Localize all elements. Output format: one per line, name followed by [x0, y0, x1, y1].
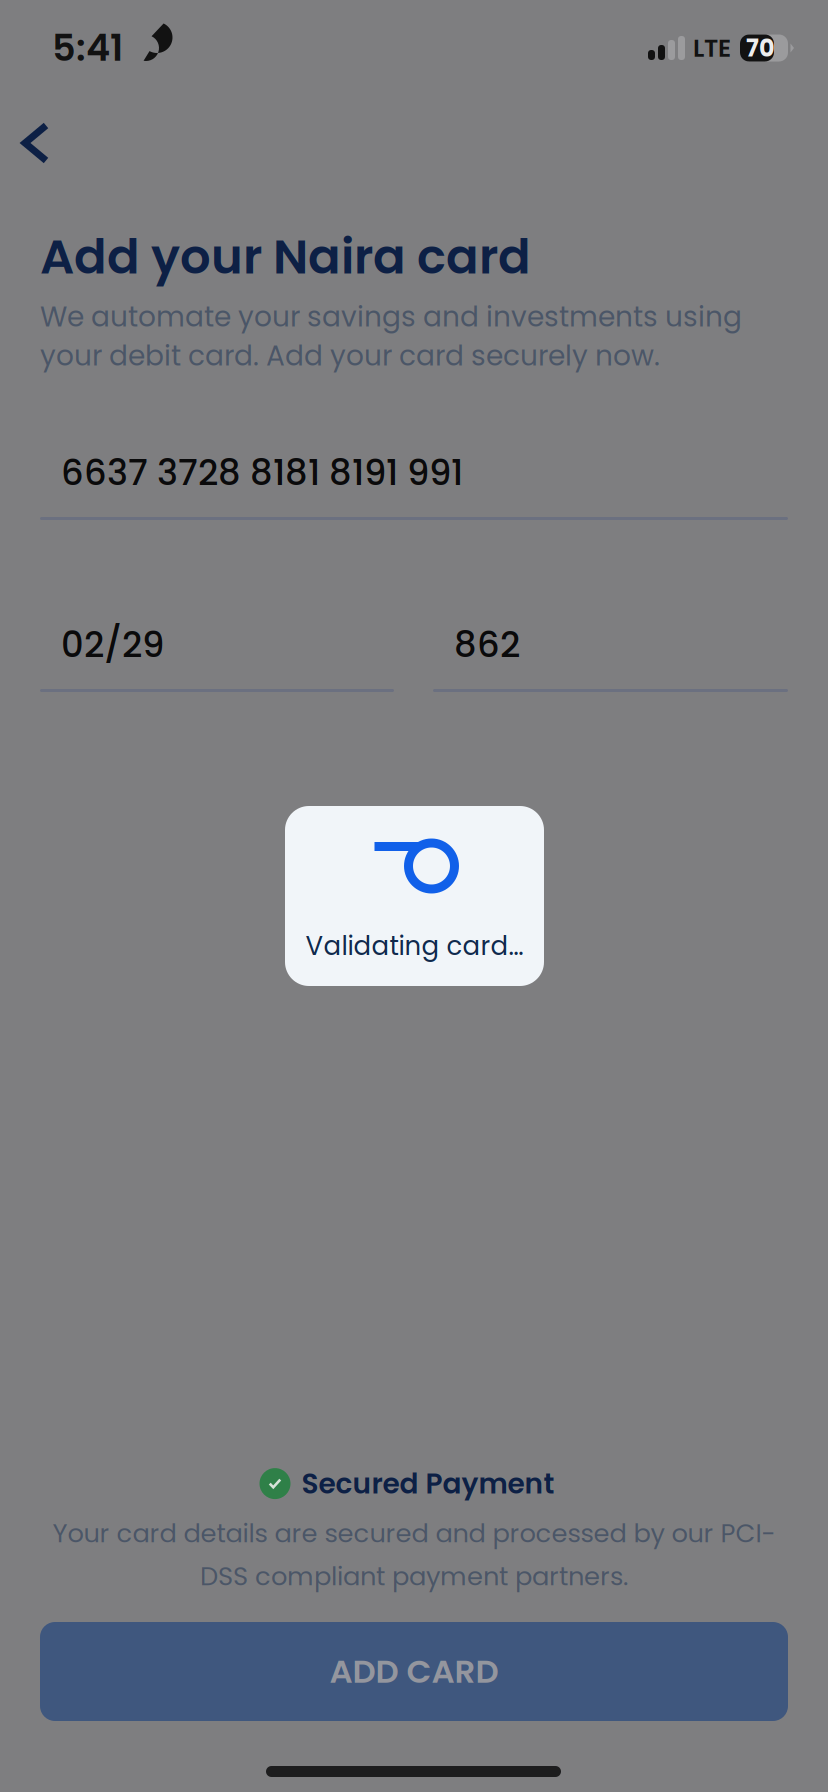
- staticText: ADD CARD: [329, 1649, 498, 1694]
- staticText: 02/29: [61, 620, 164, 669]
- button[interactable]: 862: [433, 626, 788, 688]
- staticText: Add your Naira card: [40, 223, 531, 290]
- button[interactable]: ADD CARD: [40, 1622, 788, 1721]
- staticText: DSS compliant payment partners.: [200, 1558, 628, 1594]
- button[interactable]: 6637 3728 8181 8191 991: [40, 454, 788, 516]
- staticText: your debit card. Add your card securely …: [40, 336, 660, 375]
- staticText: 5:41: [52, 22, 123, 74]
- staticText: We automate your savings and investments…: [40, 297, 742, 336]
- staticText: Secured Payment: [301, 1464, 554, 1503]
- staticText: Your card details are secured and proces…: [52, 1515, 775, 1551]
- staticText: 862: [454, 620, 520, 669]
- button[interactable]: Back: [0, 98, 75, 188]
- button[interactable]: 02/29: [40, 626, 394, 688]
- staticText: LTE: [693, 31, 731, 65]
- staticText: 70: [746, 31, 775, 65]
- staticText: Validating card…: [305, 928, 523, 964]
- staticText: 6637 3728 8181 8191 991: [61, 448, 463, 497]
